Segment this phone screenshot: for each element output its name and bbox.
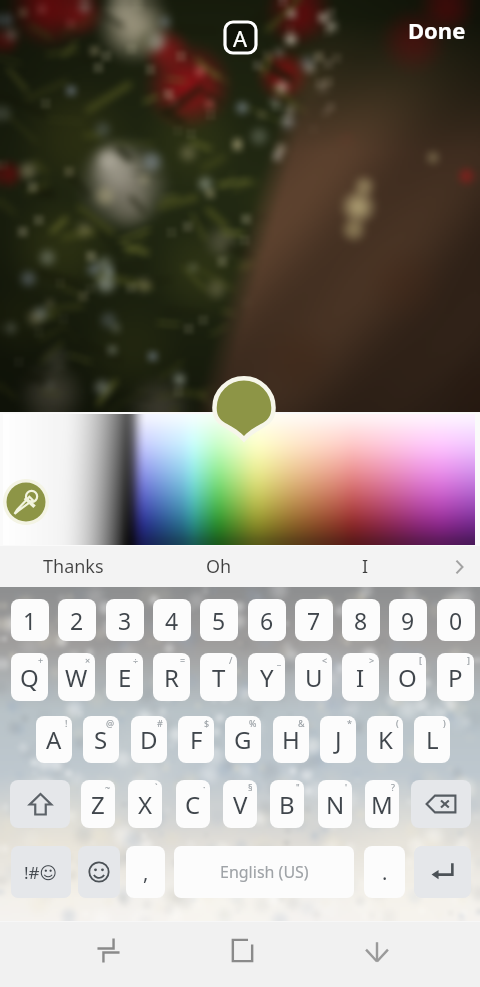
button[interactable]: E [106,653,143,701]
button[interactable]: J [320,716,356,763]
button[interactable]: R [153,653,190,701]
button[interactable]: More suggestions [438,546,480,587]
staticText: S [94,723,108,756]
button[interactable]: Y [248,653,285,701]
button[interactable]: Recent apps [68,922,148,979]
button[interactable]: Oh [146,546,292,587]
button[interactable]: 7 [295,599,333,641]
staticText: % [249,717,257,729]
button[interactable]: L [414,716,450,763]
staticText: U [305,661,323,694]
staticText: F [190,723,203,756]
button[interactable]: 2 [58,599,96,641]
button[interactable]: K [367,716,403,763]
button[interactable]: !#☺ [11,846,71,898]
staticText: 9 [401,605,415,636]
button[interactable]: Done [400,9,474,51]
button[interactable]: . [364,846,405,898]
staticText: & [298,717,305,729]
staticText: $ [204,717,210,729]
button[interactable]: G [225,716,261,763]
staticText: I [356,661,365,694]
staticText: W [65,661,88,694]
staticText: 8 [354,605,368,636]
staticText: R [164,661,179,694]
staticText: 1 [23,605,37,636]
staticText: [ [419,654,422,666]
button[interactable]: Home [202,922,282,979]
button[interactable]: 3 [106,599,144,641]
staticText: + [38,654,44,666]
staticText: M [371,788,393,821]
staticText: = [180,654,186,666]
staticText: 0 [449,605,463,636]
button[interactable]: I [342,653,379,701]
staticText: 3 [118,605,132,636]
staticText: 4 [165,605,179,636]
button[interactable]: , [126,846,165,898]
button[interactable]: T [200,653,237,701]
button[interactable]: 8 [342,599,380,641]
staticText: A [46,723,62,756]
button[interactable]: O [389,653,426,701]
button[interactable]: 9 [389,599,427,641]
staticText: # [157,717,163,729]
staticText: " [296,781,300,793]
button[interactable]: D [131,716,167,763]
staticText: ~ [105,781,111,793]
button[interactable]: C [176,780,210,828]
staticText: @ [106,717,115,729]
button[interactable]: S [83,716,119,763]
staticText: L [426,723,439,756]
staticText: G [234,723,252,756]
button[interactable]: Q [11,653,48,701]
button[interactable]: English (US) [174,846,354,898]
button[interactable]: Emoji [78,846,120,898]
button[interactable]: 0 [437,599,475,641]
button[interactable]: U [295,653,332,701]
button[interactable]: 1 [11,599,49,641]
staticText: Thanks [43,554,104,579]
button[interactable]: H [273,716,309,763]
button[interactable]: A [36,716,72,763]
staticText: H [282,723,300,756]
staticText: C [185,788,201,821]
staticText: ? [391,781,395,793]
button[interactable]: 4 [153,599,191,641]
staticText: Q [20,661,39,694]
button[interactable]: Enter [414,846,471,898]
staticText: × [85,654,91,666]
staticText: English (US) [220,861,309,883]
button[interactable]: Text style [223,20,258,55]
staticText: / [229,654,233,666]
button[interactable]: V [223,780,257,828]
button[interactable]: Eyedropper colour picker [2,478,50,526]
button[interactable]: B [270,780,304,828]
button[interactable]: Thanks [0,546,146,587]
staticText: T [212,661,226,694]
button[interactable]: Selected colour [214,375,274,441]
button[interactable]: W [58,653,95,701]
staticText: K [378,723,393,756]
staticText: 2 [70,605,84,636]
button[interactable]: 6 [248,599,286,641]
button[interactable]: N [318,780,352,828]
button[interactable]: P [437,653,474,701]
staticText: > [369,654,375,666]
staticText: _ [277,654,281,666]
staticText: 5 [212,605,226,636]
button[interactable]: Z [81,780,115,828]
button[interactable]: I [292,546,438,587]
staticText: 7 [307,605,321,636]
staticText: ÷ [133,654,139,666]
button[interactable]: Hide keyboard [337,922,417,979]
button[interactable]: Shift [10,780,70,828]
staticText: X [138,788,153,821]
button[interactable]: X [128,780,162,828]
staticText: , [143,859,149,886]
button[interactable]: F [178,716,214,763]
button[interactable]: M [365,780,399,828]
button[interactable]: Backspace [411,780,471,828]
button[interactable]: 5 [200,599,238,641]
staticText: ! [65,717,68,729]
